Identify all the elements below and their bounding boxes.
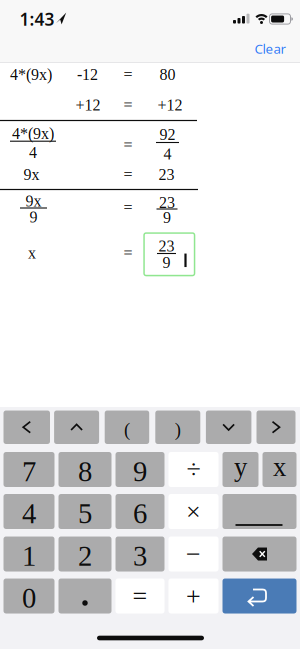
staticText: 80 bbox=[159, 66, 175, 83]
staticText: ) bbox=[175, 419, 181, 440]
button[interactable]: y bbox=[222, 452, 258, 487]
staticText: 9x bbox=[23, 166, 39, 183]
button[interactable]: 7 bbox=[3, 452, 54, 487]
staticText: +12 bbox=[157, 96, 182, 114]
staticText: 9 bbox=[163, 209, 171, 226]
staticText: 4*(9x) bbox=[10, 66, 52, 83]
staticText: − bbox=[186, 540, 201, 568]
staticText: x bbox=[28, 244, 36, 262]
button[interactable]: − bbox=[168, 536, 218, 571]
staticText: +12 bbox=[75, 96, 100, 114]
staticText: 8 bbox=[78, 456, 92, 487]
staticText: 7 bbox=[22, 456, 36, 487]
staticText: = bbox=[132, 582, 147, 610]
button[interactable] bbox=[3, 410, 50, 444]
staticText: 1 bbox=[22, 540, 36, 572]
staticText: = bbox=[123, 66, 132, 83]
staticText: 0 bbox=[22, 582, 36, 614]
staticText: 9 bbox=[162, 254, 170, 271]
staticText: × bbox=[186, 497, 201, 526]
staticText: 3 bbox=[133, 540, 147, 572]
button[interactable] bbox=[58, 578, 111, 613]
button[interactable] bbox=[54, 410, 99, 444]
button[interactable]: ( bbox=[105, 410, 149, 444]
button[interactable]: ) bbox=[155, 410, 200, 444]
staticText: 9 bbox=[29, 208, 37, 226]
staticText: 4 bbox=[163, 145, 171, 163]
staticText: -12 bbox=[77, 66, 98, 83]
button[interactable]: 4 bbox=[3, 494, 54, 529]
button[interactable]: 3 bbox=[115, 536, 164, 571]
staticText: 9 bbox=[133, 456, 147, 487]
button[interactable]: 9 bbox=[115, 452, 164, 487]
button[interactable] bbox=[222, 494, 296, 529]
staticText: 4 bbox=[29, 144, 37, 161]
button[interactable]: 6 bbox=[115, 494, 164, 529]
button[interactable]: ÷ bbox=[168, 452, 218, 487]
button[interactable]: 1 bbox=[3, 536, 54, 571]
staticText: 6 bbox=[133, 498, 147, 529]
button[interactable] bbox=[206, 410, 251, 444]
staticText: 4*(9x) bbox=[12, 125, 54, 142]
button[interactable] bbox=[256, 410, 295, 444]
button[interactable]: 8 bbox=[58, 452, 111, 487]
staticText: + bbox=[186, 582, 201, 610]
staticText: 4 bbox=[22, 498, 36, 529]
staticText: = bbox=[123, 136, 132, 154]
button[interactable]: 2 bbox=[58, 536, 111, 571]
staticText: 1:43 bbox=[19, 7, 54, 30]
staticText: x bbox=[273, 452, 286, 482]
staticText: y bbox=[234, 452, 247, 482]
staticText: 92 bbox=[159, 126, 175, 143]
staticText: = bbox=[123, 166, 132, 183]
button[interactable]: + bbox=[168, 578, 218, 613]
staticText: 9x bbox=[25, 192, 41, 210]
button[interactable]: Clear bbox=[254, 40, 286, 57]
staticText: ( bbox=[124, 419, 130, 440]
staticText: Clear bbox=[254, 40, 286, 57]
staticText: 23 bbox=[159, 194, 175, 211]
button[interactable]: 5 bbox=[58, 494, 111, 529]
staticText: = bbox=[123, 96, 132, 114]
staticText: ÷ bbox=[186, 455, 200, 484]
staticText: = bbox=[123, 199, 132, 216]
button[interactable]: = bbox=[115, 578, 164, 613]
button[interactable]: x bbox=[262, 452, 296, 487]
button[interactable] bbox=[222, 536, 296, 571]
staticText: 23 bbox=[158, 237, 174, 255]
staticText: = bbox=[123, 244, 132, 262]
button[interactable]: 0 bbox=[3, 578, 54, 613]
button[interactable] bbox=[222, 578, 296, 613]
staticText: 5 bbox=[78, 498, 92, 529]
staticText: 2 bbox=[78, 540, 92, 572]
button[interactable]: × bbox=[168, 494, 218, 529]
staticText: 23 bbox=[158, 166, 174, 183]
